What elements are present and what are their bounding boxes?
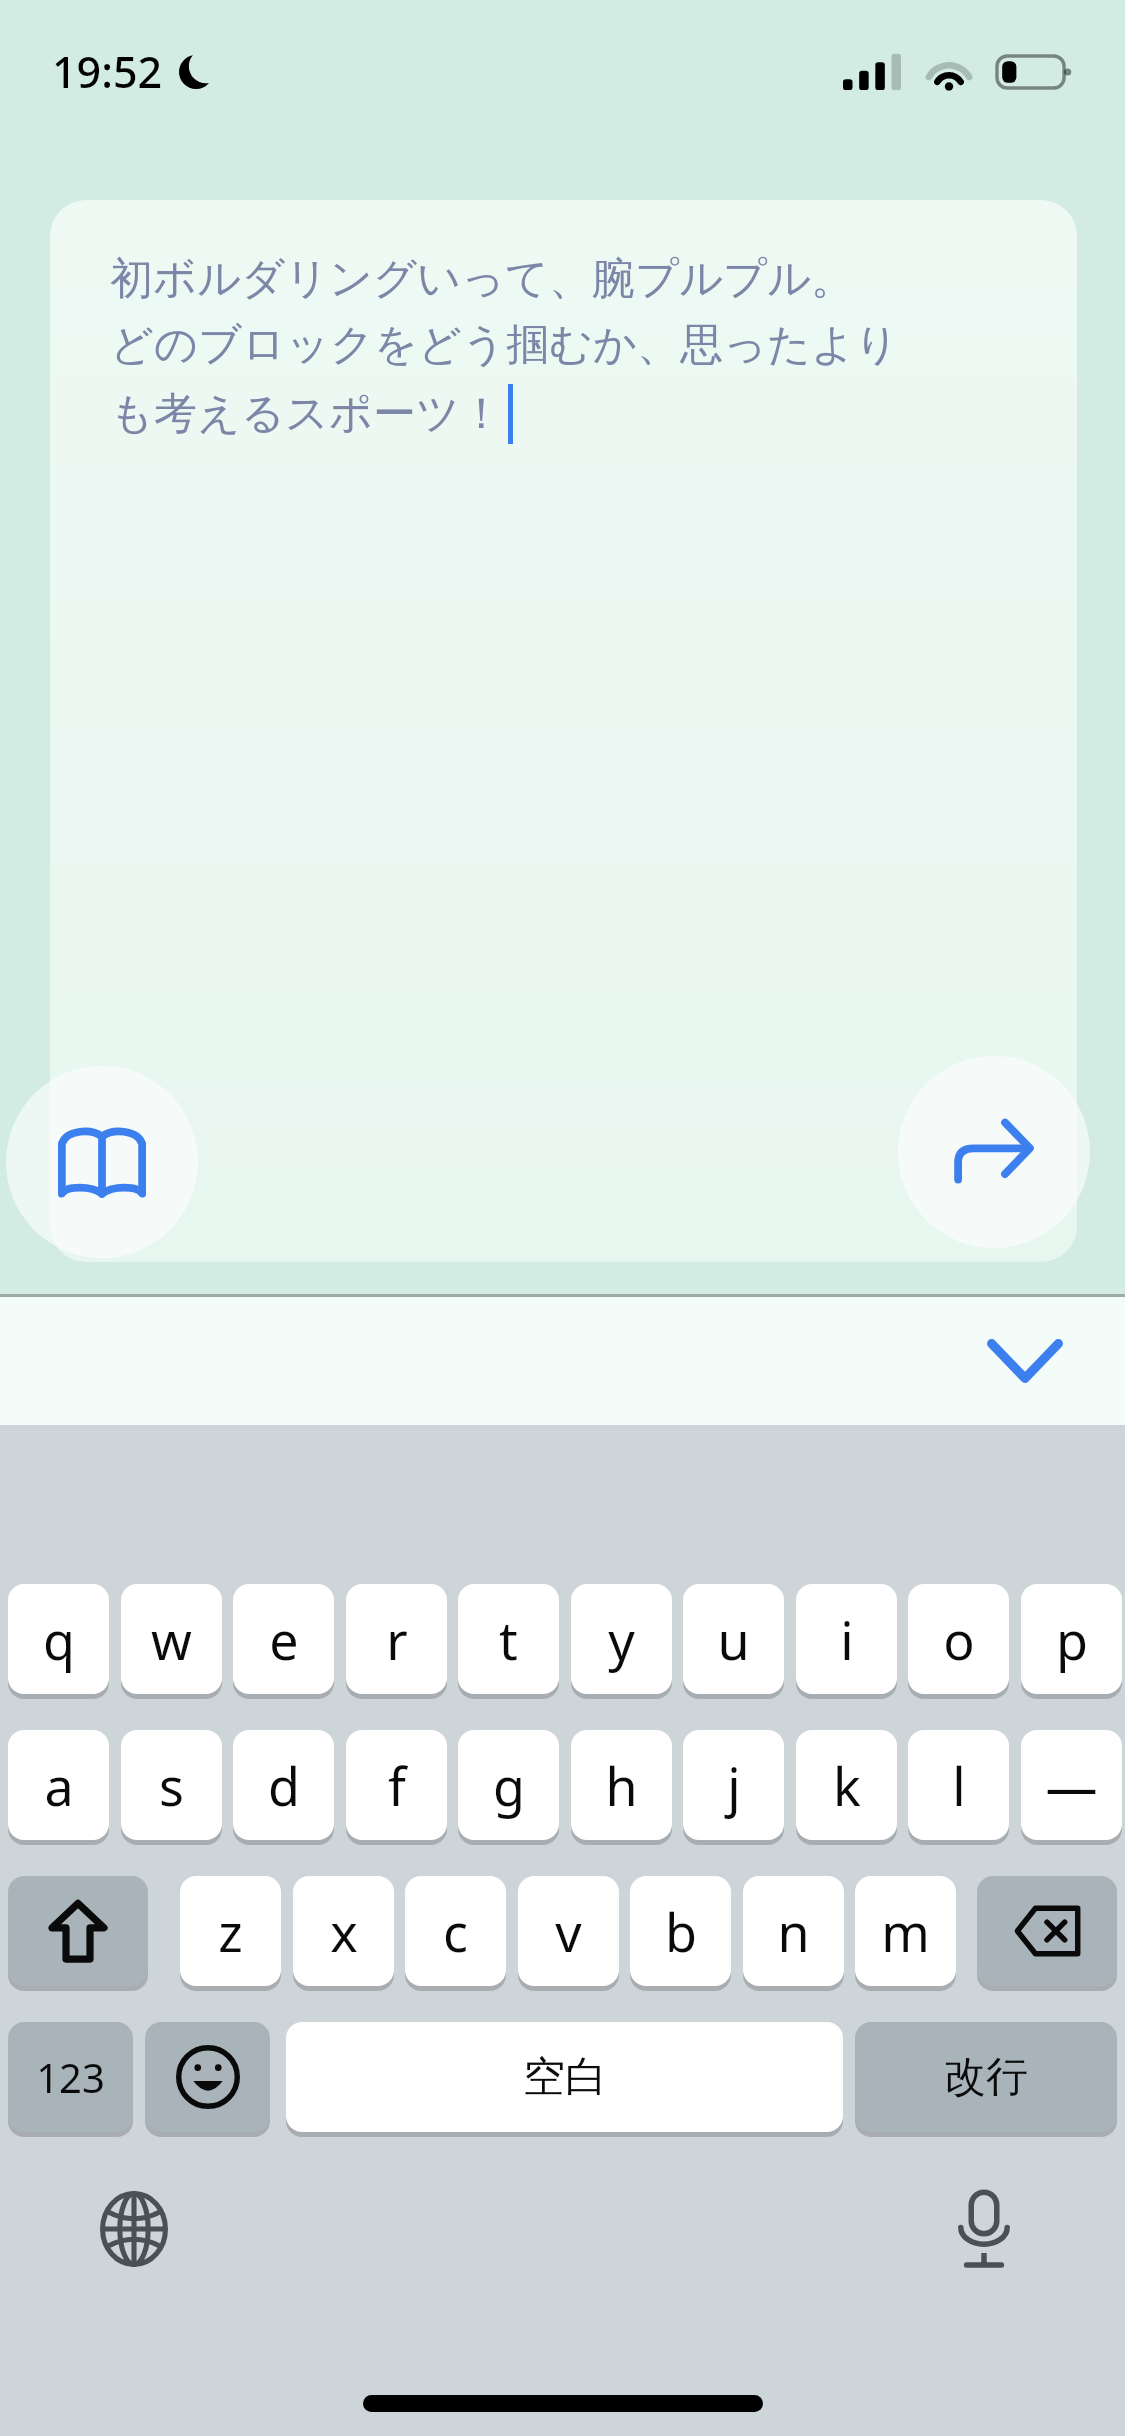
staticText: l: [952, 1750, 966, 1821]
staticText: g: [493, 1750, 525, 1821]
button[interactable]: 改行: [855, 2022, 1117, 2132]
staticText: 改行: [944, 2051, 1028, 2104]
button[interactable]: o: [908, 1584, 1009, 1694]
button[interactable]: s: [121, 1730, 222, 1840]
staticText: q: [43, 1604, 75, 1675]
staticText: j: [727, 1750, 741, 1821]
staticText: f: [388, 1750, 406, 1821]
button[interactable]: i: [796, 1584, 897, 1694]
button[interactable]: u: [683, 1584, 784, 1694]
button[interactable]: q: [8, 1584, 109, 1694]
button[interactable]: g: [458, 1730, 559, 1840]
button[interactable]: Dictate: [928, 2173, 1040, 2285]
staticText: x: [330, 1896, 358, 1967]
button[interactable]: e: [233, 1584, 334, 1694]
button[interactable]: h: [571, 1730, 672, 1840]
staticText: w: [151, 1604, 192, 1675]
button[interactable]: c: [405, 1876, 506, 1986]
staticText: —: [1045, 1750, 1098, 1821]
button[interactable]: n: [743, 1876, 844, 1986]
button[interactable]: Emoji: [145, 2022, 270, 2132]
staticText: o: [943, 1604, 975, 1675]
button[interactable]: Switch keyboard: [78, 2173, 190, 2285]
button[interactable]: l: [908, 1730, 1009, 1840]
button[interactable]: p: [1021, 1584, 1122, 1694]
button[interactable]: d: [233, 1730, 334, 1840]
button[interactable]: Delete: [977, 1876, 1117, 1986]
staticText: p: [1056, 1604, 1088, 1675]
button[interactable]: f: [346, 1730, 447, 1840]
staticText: b: [665, 1896, 697, 1967]
staticText: k: [833, 1750, 861, 1821]
staticText: r: [386, 1604, 408, 1675]
button[interactable]: Shift: [8, 1876, 148, 1986]
staticText: t: [499, 1604, 518, 1675]
button[interactable]: Hide keyboard: [963, 1299, 1087, 1423]
button[interactable]: t: [458, 1584, 559, 1694]
staticText: 19:52: [52, 42, 163, 101]
button[interactable]: z: [180, 1876, 281, 1986]
staticText: どのブロックをどう掴むか、思ったより: [110, 318, 900, 372]
staticText: 空白: [523, 2051, 607, 2104]
button[interactable]: b: [630, 1876, 731, 1986]
button[interactable]: k: [796, 1730, 897, 1840]
button[interactable]: y: [571, 1584, 672, 1694]
staticText: h: [605, 1750, 638, 1821]
staticText: e: [269, 1604, 299, 1675]
button[interactable]: m: [855, 1876, 956, 1986]
button[interactable]: x: [293, 1876, 394, 1986]
staticText: v: [555, 1896, 582, 1967]
staticText: c: [443, 1896, 468, 1967]
button[interactable]: w: [121, 1584, 222, 1694]
button[interactable]: v: [518, 1876, 619, 1986]
staticText: d: [268, 1750, 300, 1821]
button[interactable]: 初ボルダリングいって、腕プルプル。: [50, 200, 1077, 1262]
button[interactable]: j: [683, 1730, 784, 1840]
button[interactable]: 123: [8, 2022, 133, 2132]
button[interactable]: r: [346, 1584, 447, 1694]
staticText: u: [717, 1604, 750, 1675]
button[interactable]: Share: [898, 1056, 1090, 1248]
staticText: y: [608, 1604, 635, 1675]
staticText: も考えるスポーツ！: [110, 387, 504, 441]
button[interactable]: a: [8, 1730, 109, 1840]
staticText: i: [840, 1604, 854, 1675]
staticText: m: [881, 1896, 930, 1967]
staticText: a: [44, 1750, 74, 1821]
staticText: s: [159, 1750, 184, 1821]
button[interactable]: 空白: [286, 2022, 843, 2132]
staticText: 初ボルダリングいって、腕プルプル。: [110, 252, 855, 306]
button[interactable]: Dictionary: [6, 1066, 198, 1258]
staticText: 123: [36, 2050, 105, 2104]
staticText: z: [218, 1896, 243, 1967]
staticText: n: [777, 1896, 810, 1967]
button[interactable]: —: [1021, 1730, 1122, 1840]
